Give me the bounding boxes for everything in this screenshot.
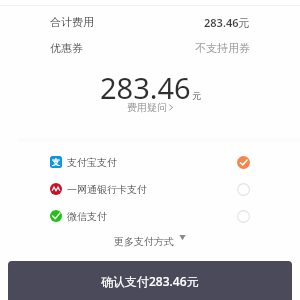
button[interactable]: 确认支付283.46元 bbox=[8, 261, 292, 300]
staticText: 确认支付283.46元 bbox=[101, 273, 199, 289]
button[interactable]: 一网通银行卡支付 bbox=[50, 176, 250, 202]
staticText: 283.46元 bbox=[204, 15, 250, 30]
staticText: 不支持用券 bbox=[195, 41, 250, 55]
staticText: 合计费用 bbox=[50, 15, 94, 29]
button[interactable]: 更多支付方式 bbox=[0, 234, 300, 248]
other: Not selected bbox=[237, 210, 250, 223]
staticText: 微信支付 bbox=[67, 210, 107, 223]
staticText: 283.46 bbox=[100, 68, 191, 107]
button[interactable]: 优惠券 bbox=[50, 35, 250, 61]
staticText: 更多支付方式 bbox=[114, 235, 174, 248]
staticText: 元 bbox=[192, 90, 201, 101]
staticText: 支付宝支付 bbox=[67, 156, 117, 169]
button[interactable]: 支 bbox=[50, 149, 250, 175]
other: Not selected bbox=[237, 183, 250, 196]
button[interactable]: 合计费用 bbox=[50, 9, 250, 35]
staticText: 一网通银行卡支付 bbox=[67, 183, 147, 196]
button[interactable]: 费用疑问 bbox=[0, 101, 300, 113]
other: Selected bbox=[237, 156, 250, 169]
staticText: 费用疑问 bbox=[127, 101, 167, 113]
button[interactable]: 微信支付 bbox=[50, 203, 250, 229]
staticText: 支 bbox=[52, 157, 60, 167]
staticText: 优惠券 bbox=[50, 41, 83, 55]
